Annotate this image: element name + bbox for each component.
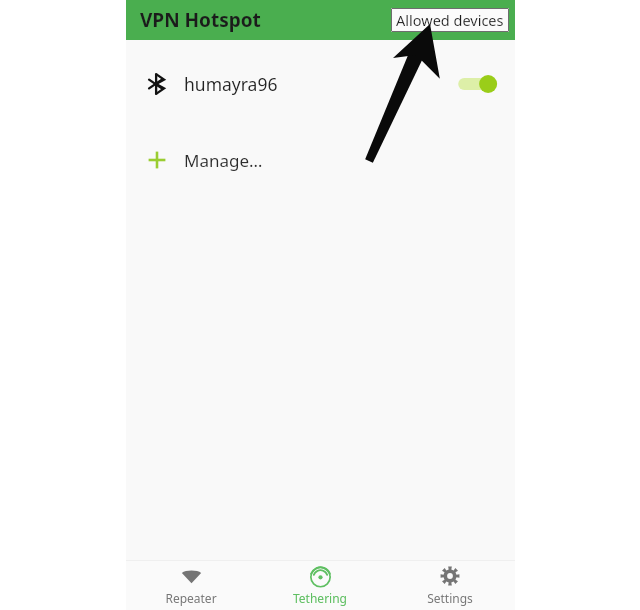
staticText: VPN Hotspot xyxy=(140,7,261,33)
staticText: humayra96 xyxy=(184,72,278,96)
button[interactable]: Repeater xyxy=(126,561,255,610)
button[interactable]: Toggle device tethering xyxy=(455,69,501,99)
button[interactable]: Manage… xyxy=(126,138,515,182)
staticText: Repeater xyxy=(165,590,217,606)
staticText: Allowed devices xyxy=(396,10,504,30)
button[interactable]: Tethering xyxy=(255,561,385,610)
button[interactable]: Allowed devices xyxy=(391,8,509,32)
button[interactable]: Settings xyxy=(385,561,515,610)
button[interactable]: humayra96 xyxy=(126,58,515,110)
staticText: Tethering xyxy=(293,590,347,606)
staticText: Manage… xyxy=(184,149,263,172)
staticText: Settings xyxy=(427,590,473,606)
